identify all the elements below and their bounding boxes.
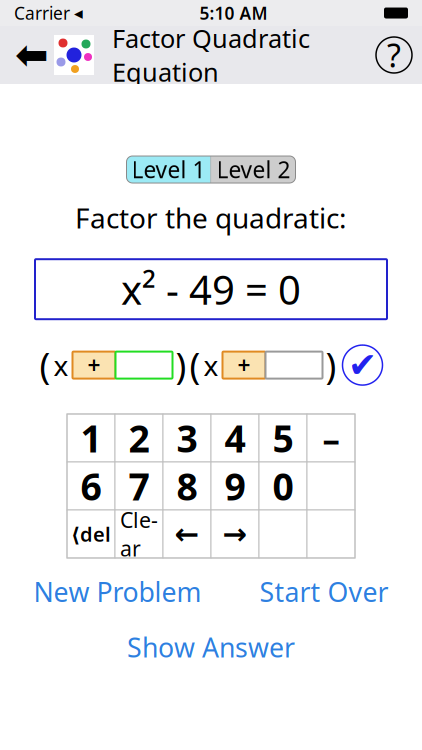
staticText: x² - 49 = 0 <box>121 263 301 316</box>
staticText: 5:10 AM <box>199 1 267 24</box>
staticText: → <box>222 517 247 551</box>
button[interactable]: Move left <box>163 510 211 558</box>
staticText: + <box>87 350 100 380</box>
staticText: Show Answer <box>127 629 295 665</box>
staticText: – <box>322 415 339 461</box>
staticText: x <box>203 346 218 384</box>
staticText: Carrier <box>14 1 70 24</box>
staticText: 1 <box>80 413 101 463</box>
button[interactable]: Constant term <box>115 352 172 379</box>
staticText: ⟨del <box>71 521 111 547</box>
button[interactable]: Start Over <box>253 570 394 613</box>
staticText: 8 <box>176 461 197 511</box>
staticText: ⬅ <box>15 32 49 78</box>
button[interactable]: 6 <box>67 462 115 510</box>
button[interactable]: 2 <box>115 414 163 462</box>
staticText: ( <box>39 341 50 389</box>
staticText: Clear <box>120 506 158 562</box>
button[interactable]: 1 <box>67 414 115 462</box>
staticText: x <box>53 346 68 384</box>
button[interactable]: Check answer <box>342 345 382 385</box>
button[interactable]: Level 2 <box>211 156 295 183</box>
staticText: 7 <box>128 461 149 511</box>
button[interactable]: 7 <box>115 462 163 510</box>
staticText: 2 <box>128 413 149 463</box>
button[interactable]: 3 <box>163 414 211 462</box>
staticText: 9 <box>224 461 245 511</box>
staticText: ◂ <box>74 3 83 23</box>
button[interactable]: + <box>222 352 265 379</box>
staticText: 4 <box>224 413 245 463</box>
button[interactable]: Show Answer <box>121 625 301 669</box>
staticText: ) <box>175 341 186 389</box>
button[interactable]: Delete <box>67 510 115 558</box>
button[interactable]: Level 1 <box>126 156 210 183</box>
button[interactable]: Clear <box>115 510 163 558</box>
staticText: Factor Quadratic Equation <box>112 21 310 89</box>
staticText: Level 2 <box>216 154 290 184</box>
staticText: ← <box>174 517 199 551</box>
staticText: New Problem <box>33 574 201 609</box>
button[interactable]: Back <box>10 31 54 79</box>
button[interactable]: Move right <box>211 510 259 558</box>
button[interactable]: 4 <box>211 414 259 462</box>
staticText: ? <box>387 34 401 76</box>
staticText: 0 <box>272 461 293 511</box>
button[interactable]: 8 <box>163 462 211 510</box>
button[interactable]: 0 <box>259 462 307 510</box>
staticText: ✔ <box>348 345 377 385</box>
button[interactable]: + <box>72 352 115 379</box>
button[interactable]: 5 <box>259 414 307 462</box>
staticText: 6 <box>80 461 101 511</box>
staticText: 5 <box>272 413 293 463</box>
staticText: Level 1 <box>131 154 205 184</box>
staticText: ) <box>325 341 336 389</box>
staticText: 3 <box>176 413 197 463</box>
staticText: + <box>237 350 250 380</box>
button[interactable]: New Problem <box>27 570 207 613</box>
button[interactable]: Help <box>376 37 412 73</box>
button[interactable]: – <box>307 414 355 462</box>
staticText: Factor the quadratic: <box>75 199 347 236</box>
button[interactable]: 9 <box>211 462 259 510</box>
button[interactable]: Constant term <box>265 352 322 379</box>
staticText: Start Over <box>259 574 388 609</box>
staticText: ( <box>189 341 200 389</box>
